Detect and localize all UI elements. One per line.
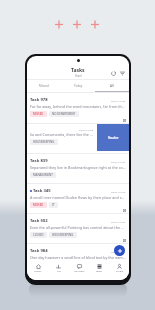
button[interactable]: All — [95, 80, 129, 92]
staticText: Today — [74, 84, 83, 88]
staticText: 03:41:41 PM — [79, 128, 94, 131]
button[interactable]: Filter — [118, 69, 126, 77]
staticText: HOUSEKEEPING — [52, 233, 74, 237]
staticText: MISSED — [33, 112, 44, 116]
staticText: A small river named Duden flows by their… — [30, 195, 126, 200]
staticText: 03:41:41 PM — [111, 99, 126, 102]
staticText: Task 345 — [33, 188, 51, 194]
staticText: lia and Consonantia, there live the bli.… — [30, 132, 94, 137]
button[interactable]: Task 345 — [27, 183, 129, 213]
staticText: NO DEPARTMENT — [52, 112, 76, 116]
staticText: Even the all-powerful Pointing has contr… — [30, 225, 126, 230]
button[interactable]: Profile — [109, 262, 129, 280]
staticText: Task 978 — [30, 97, 48, 103]
staticText: Missed — [39, 84, 49, 88]
staticText: Separated they live in Bookmarksgrove ri… — [30, 165, 126, 170]
staticText: Poll — [57, 270, 61, 273]
staticText: Task 502 — [30, 218, 48, 224]
staticText: Profile — [116, 270, 123, 273]
staticText: 03:41:41 PM — [111, 190, 126, 193]
staticText: MANAGEMENT — [33, 173, 53, 177]
staticText: Tasks — [71, 67, 85, 74]
button[interactable]: Tasks — [89, 262, 109, 280]
staticText: Spaces — [34, 270, 42, 273]
staticText: Task 984 — [30, 248, 48, 254]
button[interactable]: Missed — [27, 80, 61, 92]
staticText: 03:41:41 PM — [111, 160, 126, 163]
button[interactable]: Spaces — [27, 262, 48, 280]
button[interactable]: Task 502 — [27, 213, 129, 243]
staticText: CLOSED — [33, 233, 44, 237]
staticText: Far far away, behind the word mountains,… — [30, 104, 126, 109]
staticText: 03:41:41 PM — [111, 250, 126, 253]
button[interactable]: Refresh — [109, 69, 117, 77]
button[interactable]: Task 984 — [27, 243, 129, 261]
button[interactable]: Task 978 — [27, 92, 129, 123]
staticText: 03:41:41 PM — [111, 220, 126, 223]
button[interactable]: Add task — [114, 245, 125, 256]
button[interactable]: Today — [61, 80, 95, 92]
staticText: One day however a small line of blind te… — [30, 255, 126, 260]
button[interactable]: Poll — [48, 262, 69, 280]
staticText: Messages — [74, 270, 85, 273]
staticText: MISSED — [33, 203, 44, 207]
staticText: Hotel — [75, 74, 82, 78]
staticText: Tasks — [96, 270, 102, 273]
staticText: IT — [52, 203, 55, 207]
staticText: Task 839 — [30, 158, 48, 164]
button[interactable]: Task 839 — [27, 153, 129, 183]
button[interactable]: Messages — [69, 262, 89, 280]
staticText: All — [110, 84, 114, 88]
staticText: HOUSEKEEPING — [33, 140, 55, 144]
button[interactable]: Resolve — [97, 124, 129, 151]
staticText: Resolve — [108, 136, 119, 140]
